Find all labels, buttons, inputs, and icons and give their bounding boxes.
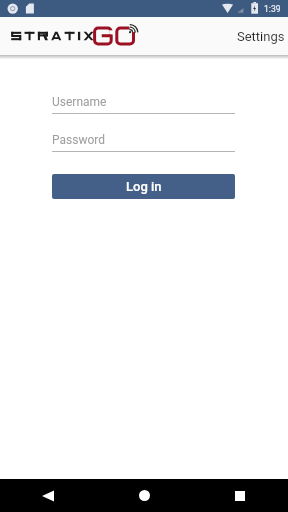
staticText: Username (52, 95, 107, 109)
button[interactable]: Log in (52, 174, 235, 199)
staticText: Password (52, 133, 106, 147)
button[interactable]: Recent apps (192, 479, 288, 512)
button[interactable]: Password (52, 133, 235, 152)
button[interactable]: Home (96, 479, 192, 512)
staticText: Log in (126, 179, 162, 194)
button[interactable]: Back (0, 479, 96, 512)
button[interactable]: Settings (225, 21, 288, 52)
staticText: 1:39 (264, 4, 281, 14)
staticText: Settings (237, 29, 285, 44)
button[interactable]: Username (52, 95, 235, 114)
